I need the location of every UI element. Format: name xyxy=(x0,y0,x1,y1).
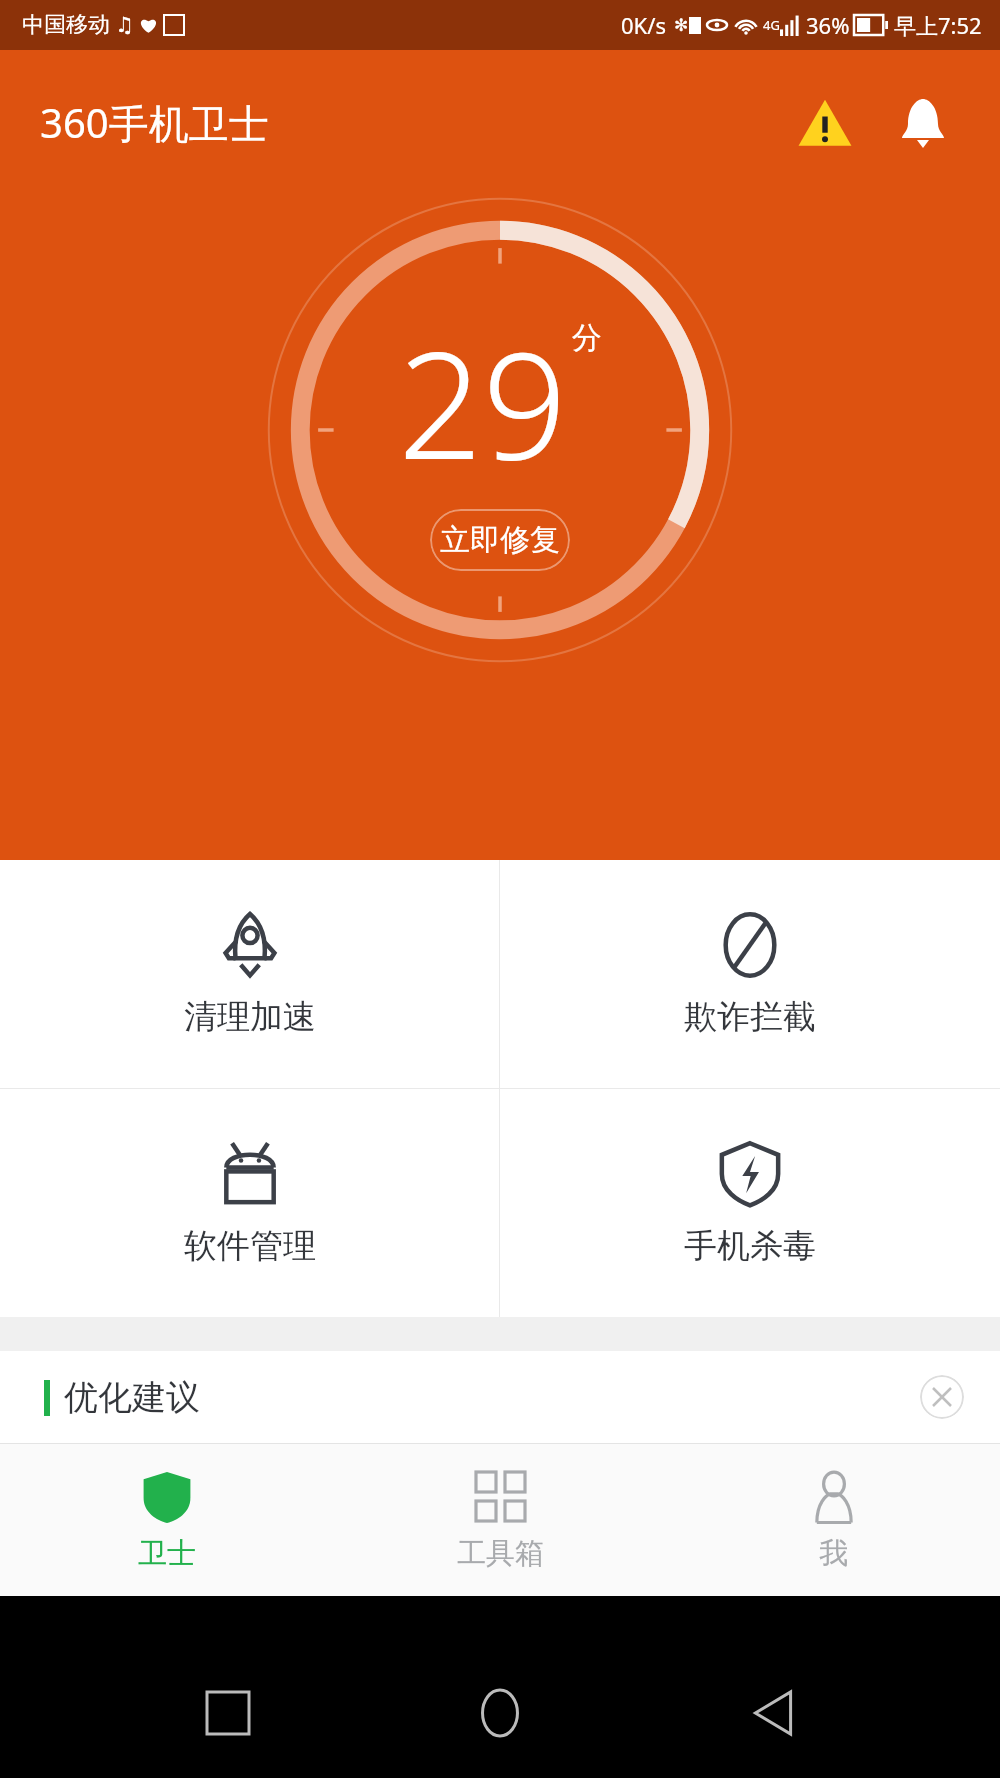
staticText: ♫ xyxy=(115,13,134,37)
button[interactable]: 清理加速 xyxy=(0,860,499,1088)
staticText: ✻ xyxy=(674,15,689,35)
staticText: 分 xyxy=(572,319,602,357)
staticText: 优化建议 xyxy=(64,1376,200,1419)
button[interactable]: 立即修复 xyxy=(430,509,570,571)
button[interactable]: 软件管理 xyxy=(0,1089,499,1317)
staticText: 立即修复 xyxy=(440,521,560,559)
button[interactable]: Warning xyxy=(788,86,862,160)
staticText: 清理加速 xyxy=(184,996,316,1038)
button[interactable]: 卫士 xyxy=(0,1444,334,1596)
staticText: 360手机卫士 xyxy=(40,95,269,150)
staticText: 早上7:52 xyxy=(894,10,982,40)
staticText: 中国移动 xyxy=(22,11,110,39)
staticText: 我 xyxy=(819,1535,848,1572)
button[interactable]: Recents xyxy=(183,1668,273,1758)
button[interactable]: 工具箱 xyxy=(334,1444,667,1596)
staticText: 欺诈拦截 xyxy=(684,996,816,1038)
staticText: 36% xyxy=(806,10,850,40)
button[interactable]: 欺诈拦截 xyxy=(500,860,1000,1088)
staticText: 手机杀毒 xyxy=(684,1225,816,1267)
staticText: 软件管理 xyxy=(184,1225,316,1267)
staticText: 工具箱 xyxy=(457,1535,544,1572)
button[interactable]: 手机杀毒 xyxy=(500,1089,1000,1317)
staticText: 4G xyxy=(763,16,780,34)
staticText: 卫士 xyxy=(138,1535,196,1572)
button[interactable]: Back xyxy=(728,1668,818,1758)
button[interactable]: Close xyxy=(920,1375,964,1419)
button[interactable]: Notifications xyxy=(886,86,960,160)
button[interactable]: 我 xyxy=(667,1444,1000,1596)
button[interactable]: Home xyxy=(455,1668,545,1758)
staticText: 0K/s xyxy=(621,10,666,40)
staticText: 29 xyxy=(398,301,568,503)
